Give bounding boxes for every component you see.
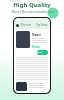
staticText: Top Story xyxy=(36,23,48,27)
staticText: Novel Recommendations xyxy=(11,9,54,14)
staticText: Fiction xyxy=(32,45,41,49)
button[interactable]: Start Read xyxy=(37,50,48,55)
staticText: High Quality xyxy=(13,1,51,9)
staticText: Name xyxy=(32,33,41,37)
staticText: Discover xyxy=(21,23,32,27)
staticText: Start Read xyxy=(37,50,48,55)
